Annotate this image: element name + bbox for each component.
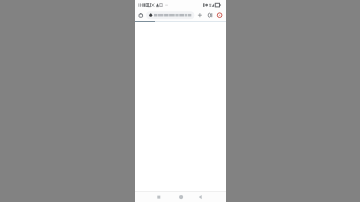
button[interactable]: Account: [214, 9, 226, 21]
button[interactable]: Switch tabs, 1 tab open: [204, 9, 214, 21]
button[interactable]: Search or type web address: [146, 9, 195, 21]
button[interactable]: New tab: [195, 9, 204, 21]
button[interactable]: Home: [135, 9, 146, 21]
button[interactable]: Back: [198, 192, 218, 202]
button[interactable]: Recent apps: [143, 192, 163, 202]
button[interactable]: Home: [171, 192, 191, 202]
